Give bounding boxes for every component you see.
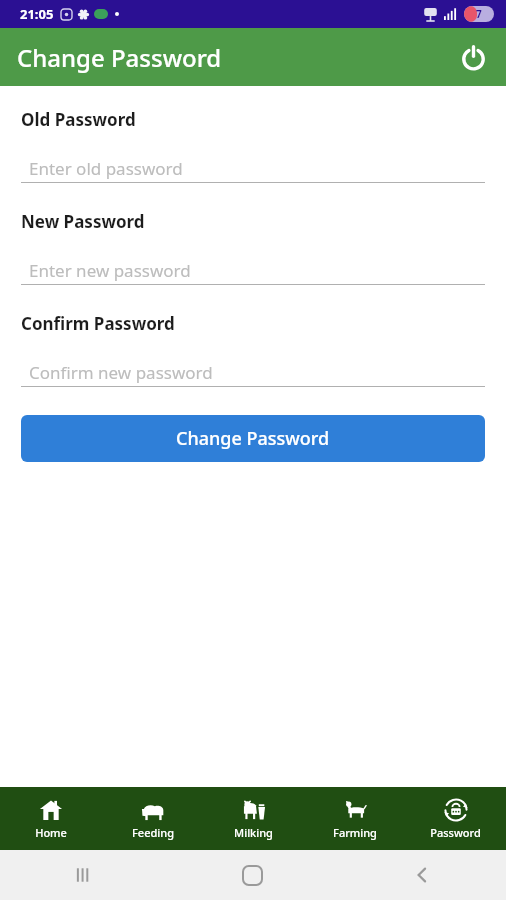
button[interactable]: Enter old password — [21, 153, 485, 183]
button[interactable]: Password — [405, 787, 506, 850]
button[interactable]: Logout — [451, 35, 495, 79]
button[interactable]: Farming — [304, 787, 405, 850]
staticText: Enter new password — [29, 259, 191, 282]
staticText: Old Password — [21, 108, 136, 131]
staticText: 7 — [476, 7, 482, 21]
button[interactable]: Enter new password — [21, 255, 485, 285]
staticText: Home — [35, 825, 67, 840]
staticText: Milking — [234, 825, 273, 840]
button[interactable]: Confirm new password — [21, 357, 485, 387]
staticText: Change Password — [176, 426, 330, 451]
button[interactable]: Change Password — [21, 415, 485, 462]
staticText: Confirm Password — [21, 312, 175, 335]
staticText: Feeding — [132, 825, 174, 840]
staticText: Confirm new password — [29, 361, 213, 384]
staticText: New Password — [21, 210, 145, 233]
staticText: Change Password — [17, 41, 222, 74]
staticText: Enter old password — [29, 157, 183, 180]
staticText: 21:05 — [20, 5, 54, 23]
staticText: Password — [430, 825, 481, 840]
staticText: Farming — [333, 825, 377, 840]
button[interactable]: Feeding — [102, 787, 203, 850]
button[interactable]: Milking — [203, 787, 304, 850]
button[interactable]: Recent apps — [0, 850, 168, 900]
button[interactable]: Back — [337, 850, 506, 900]
button[interactable]: Home — [168, 850, 337, 900]
button[interactable]: Home — [0, 787, 102, 850]
